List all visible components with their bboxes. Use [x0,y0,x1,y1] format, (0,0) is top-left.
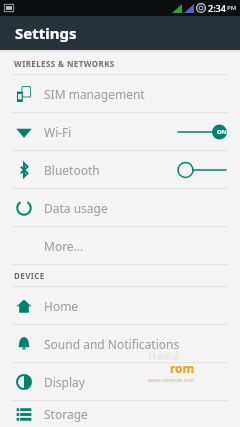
staticText: Settings [15,23,77,43]
button[interactable]: Storage [0,401,240,427]
staticText: rom [170,360,195,376]
staticText: Bluetooth [44,162,100,178]
staticText: DEVICE [14,270,45,281]
staticText: PM [227,4,237,12]
button[interactable]: Wi-Fi [0,113,240,150]
button[interactable]: Data usage [0,189,240,226]
button[interactable]: Toggle on [176,120,228,144]
button[interactable]: Bluetooth [0,151,240,188]
staticText: www.needrom.com [148,377,194,384]
staticText: More... [44,238,84,254]
staticText: Display [44,374,85,390]
staticText: Home [44,298,79,314]
staticText: SIM management [44,86,145,102]
button[interactable]: Display [0,363,240,400]
button[interactable]: Toggle off [176,158,228,182]
staticText: 2:34 [208,2,226,14]
staticText: Sound and Notifications [44,336,180,352]
staticText: Data usage [44,200,108,216]
button[interactable]: Settings [0,16,240,50]
button[interactable]: SIM management [0,75,240,112]
staticText: Storage [44,406,88,422]
button[interactable]: More... [0,227,240,264]
staticText: Wi-Fi [44,124,72,140]
button[interactable]: Sound and Notifications [0,325,240,362]
button[interactable]: Home [0,287,240,324]
staticText: WIRELESS & NETWORKS [14,58,115,69]
staticText: ON [217,128,227,136]
staticText: neea [148,346,180,364]
